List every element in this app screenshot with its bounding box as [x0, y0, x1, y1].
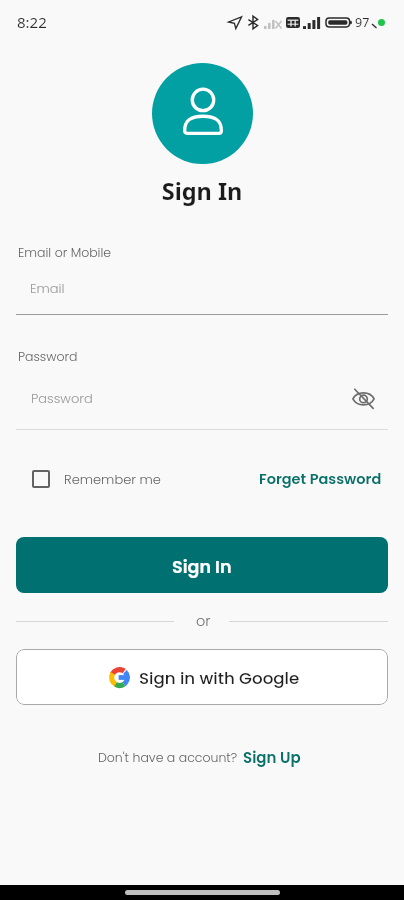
staticText: Sign In — [0, 175, 404, 207]
staticText: Don't have a account? — [98, 749, 238, 766]
staticText: Forget Password — [259, 469, 382, 489]
button[interactable]: Remember me — [32, 470, 161, 488]
staticText: Email — [30, 279, 65, 297]
staticText: Sign in with Google — [139, 666, 300, 689]
staticText: 8:22 — [17, 12, 47, 32]
button[interactable]: Sign Up — [243, 747, 301, 768]
button[interactable]: Show password — [347, 382, 379, 414]
staticText: Remember me — [64, 470, 161, 488]
button[interactable]: Sign in with Google — [16, 649, 388, 705]
staticText: Sign Up — [243, 747, 301, 768]
button[interactable]: Forget Password — [259, 469, 382, 489]
staticText: Password — [18, 348, 78, 365]
button[interactable]: Sign In — [16, 537, 388, 593]
staticText: or — [196, 611, 211, 631]
staticText: 97 — [355, 14, 370, 31]
staticText: Sign In — [172, 555, 232, 580]
staticText: Password — [31, 389, 93, 407]
staticText: Email or Mobile — [18, 244, 112, 261]
